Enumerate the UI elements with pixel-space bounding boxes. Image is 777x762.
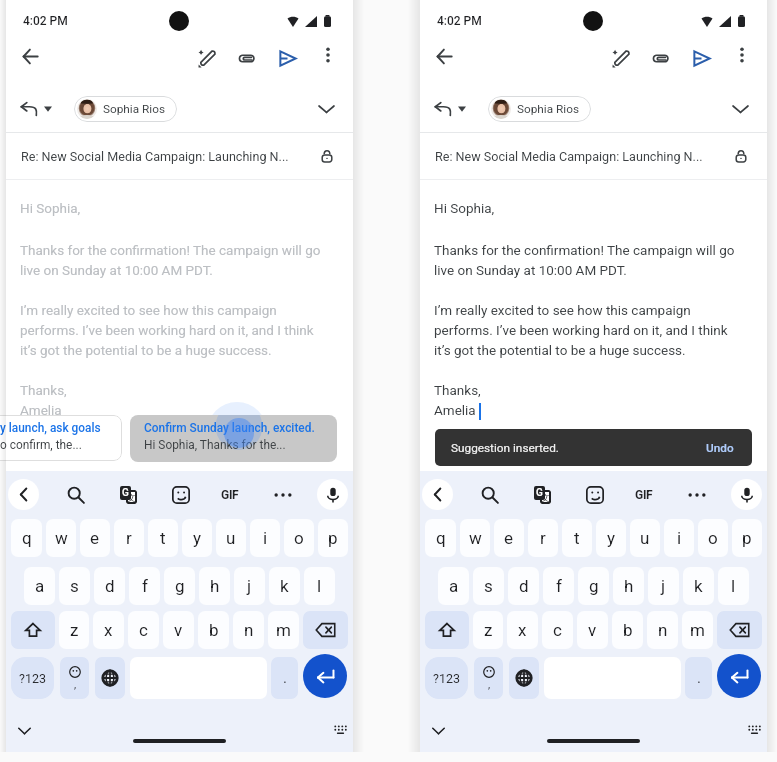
button[interactable]: Stickers: [165, 479, 196, 510]
button[interactable]: m: [268, 611, 299, 649]
button[interactable]: Emoji: [474, 657, 503, 699]
button[interactable]: i: [250, 519, 280, 557]
button[interactable]: Change language: [509, 657, 539, 699]
button[interactable]: e: [80, 519, 110, 557]
button[interactable]: ?123: [425, 657, 468, 699]
button[interactable]: m: [682, 611, 713, 649]
button[interactable]: Change language: [95, 657, 125, 699]
button[interactable]: Reply options: [15, 89, 63, 129]
button[interactable]: r: [528, 519, 558, 557]
button[interactable]: n: [233, 611, 264, 649]
button[interactable]: j: [648, 567, 679, 605]
button[interactable]: a: [24, 567, 55, 605]
button[interactable]: w: [460, 519, 490, 557]
button[interactable]: k: [683, 567, 714, 605]
button[interactable]: d: [94, 567, 125, 605]
button[interactable]: p: [732, 519, 762, 557]
button[interactable]: u: [630, 519, 660, 557]
button[interactable]: Confirm Sunday launch, excited.: [130, 415, 337, 462]
button[interactable]: k: [269, 567, 300, 605]
button[interactable]: s: [473, 567, 504, 605]
button[interactable]: Switch keyboard: [739, 714, 769, 744]
button[interactable]: u: [216, 519, 246, 557]
button[interactable]: Hide keyboard: [422, 715, 454, 747]
button[interactable]: More options: [725, 38, 759, 72]
button[interactable]: GIF: [627, 479, 661, 510]
button[interactable]: Hide keyboard: [8, 715, 40, 747]
button[interactable]: h: [199, 567, 230, 605]
button[interactable]: Shift: [425, 611, 469, 649]
button[interactable]: s: [59, 567, 90, 605]
button[interactable]: b: [198, 611, 229, 649]
button[interactable]: o: [284, 519, 314, 557]
button[interactable]: t: [562, 519, 592, 557]
button[interactable]: Switch keyboard: [325, 714, 355, 744]
button[interactable]: ?123: [11, 657, 54, 699]
button[interactable]: w: [46, 519, 76, 557]
button[interactable]: z: [59, 611, 89, 649]
button[interactable]: Stickers: [579, 479, 610, 510]
button[interactable]: Undo: [702, 438, 738, 458]
button[interactable]: a: [438, 567, 469, 605]
button[interactable]: Attach file: [640, 38, 680, 78]
button[interactable]: Help me write: [187, 38, 227, 78]
button[interactable]: j: [234, 567, 265, 605]
button[interactable]: Help me write: [601, 38, 641, 78]
button[interactable]: Translate: [527, 479, 558, 510]
button[interactable]: q: [425, 519, 456, 557]
button[interactable]: l: [718, 567, 749, 605]
button[interactable]: Back: [10, 36, 50, 76]
button[interactable]: Backspace: [717, 611, 762, 649]
button[interactable]: r: [114, 519, 144, 557]
button[interactable]: Sophia Rios: [74, 96, 177, 122]
button[interactable]: Translate: [113, 479, 144, 510]
button[interactable]: Expand header: [723, 92, 757, 126]
button[interactable]: v: [577, 611, 608, 649]
button[interactable]: More keyboard options: [267, 479, 298, 510]
button[interactable]: Shift: [11, 611, 55, 649]
button[interactable]: h: [613, 567, 644, 605]
button[interactable]: Voice input: [731, 479, 762, 510]
button[interactable]: n: [647, 611, 678, 649]
button[interactable]: Sophia Rios: [488, 96, 591, 122]
button[interactable]: g: [164, 567, 195, 605]
button[interactable]: y: [596, 519, 626, 557]
button[interactable]: Backspace: [303, 611, 348, 649]
button[interactable]: .: [271, 657, 298, 699]
button[interactable]: z: [473, 611, 503, 649]
button[interactable]: f: [129, 567, 160, 605]
button[interactable]: Send: [267, 38, 307, 78]
button[interactable]: .: [685, 657, 712, 699]
button[interactable]: Reply options: [429, 89, 477, 129]
button[interactable]: o: [698, 519, 728, 557]
button[interactable]: d: [508, 567, 539, 605]
button[interactable]: f: [543, 567, 574, 605]
button[interactable]: t: [148, 519, 178, 557]
button[interactable]: y: [182, 519, 212, 557]
button[interactable]: Previous: [422, 479, 453, 510]
button[interactable]: Search: [474, 479, 505, 510]
button[interactable]: Enter: [303, 654, 347, 698]
button[interactable]: Enter: [717, 654, 761, 698]
button[interactable]: i: [664, 519, 694, 557]
button[interactable]: Send: [681, 38, 721, 78]
button[interactable]: p: [318, 519, 348, 557]
button[interactable]: Emoji: [60, 657, 89, 699]
button[interactable]: q: [11, 519, 42, 557]
button[interactable]: Attach file: [226, 38, 266, 78]
button[interactable]: Search: [60, 479, 91, 510]
button[interactable]: x: [507, 611, 538, 649]
button[interactable]: l: [304, 567, 335, 605]
button[interactable]: c: [128, 611, 159, 649]
button[interactable]: v: [163, 611, 194, 649]
button[interactable]: GIF: [213, 479, 247, 510]
button[interactable]: Expand header: [309, 92, 343, 126]
button[interactable]: b: [612, 611, 643, 649]
button[interactable]: Back: [424, 36, 464, 76]
button[interactable]: y launch, ask goals: [0, 415, 122, 461]
button[interactable]: More options: [311, 38, 345, 72]
button[interactable]: c: [542, 611, 573, 649]
button[interactable]: g: [578, 567, 609, 605]
